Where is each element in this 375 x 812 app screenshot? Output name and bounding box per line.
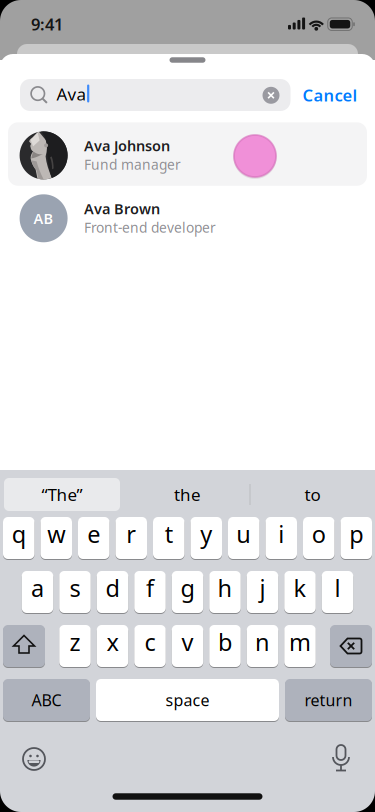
staticText: Ava Johnson [84, 136, 170, 155]
button[interactable]: h [209, 570, 241, 613]
button[interactable]: AB [8, 186, 367, 250]
staticText: x [106, 626, 118, 658]
staticText: 9:41 [31, 13, 63, 35]
staticText: o [312, 518, 326, 550]
staticText: j [259, 572, 265, 604]
button[interactable]: z [59, 624, 91, 667]
button[interactable]: p [340, 516, 372, 559]
staticText: f [146, 572, 154, 604]
staticText: c [144, 626, 155, 658]
staticText: to [304, 483, 320, 506]
staticText: return [304, 689, 352, 711]
staticText: g [180, 572, 194, 604]
staticText: Cancel [302, 84, 357, 106]
staticText: space [165, 689, 209, 711]
staticText: Fund manager [84, 155, 181, 174]
button[interactable]: k [284, 570, 316, 613]
staticText: “The” [41, 483, 82, 506]
staticText: q [12, 518, 26, 550]
button[interactable] [23, 748, 45, 770]
button[interactable]: r [115, 516, 147, 559]
button[interactable]: x [97, 624, 128, 667]
button[interactable]: w [40, 516, 72, 559]
staticText: r [126, 518, 136, 550]
button[interactable]: s [59, 570, 91, 613]
button[interactable]: b [209, 624, 241, 667]
button[interactable]: e [78, 516, 109, 559]
button[interactable] [3, 624, 45, 667]
button[interactable]: Ava Johnson [8, 122, 367, 186]
button[interactable]: space [96, 678, 279, 721]
staticText: a [31, 572, 44, 604]
button[interactable]: “The” [4, 478, 120, 511]
staticText: u [236, 518, 251, 550]
staticText: AB [34, 208, 54, 228]
button[interactable] [330, 624, 372, 667]
staticText: m [289, 626, 311, 658]
button[interactable]: c [134, 624, 166, 667]
button[interactable]: u [228, 516, 259, 559]
staticText: t [165, 518, 173, 550]
button[interactable]: Cancel [295, 79, 365, 111]
staticText: p [349, 518, 363, 550]
button[interactable]: to [257, 478, 367, 511]
button[interactable]: i [265, 516, 297, 559]
button[interactable]: q [3, 516, 34, 559]
button[interactable]: g [172, 570, 203, 613]
staticText: d [105, 572, 119, 604]
button[interactable]: n [247, 624, 278, 667]
button[interactable]: the [132, 478, 242, 511]
button[interactable]: t [153, 516, 184, 559]
button[interactable]: v [172, 624, 203, 667]
staticText: Front-end developer [84, 218, 216, 237]
button[interactable]: return [285, 678, 372, 721]
staticText: n [255, 626, 270, 658]
staticText: e [87, 518, 100, 550]
staticText: z [69, 626, 80, 658]
button[interactable] [329, 745, 353, 773]
button[interactable]: m [284, 624, 316, 667]
staticText: i [278, 518, 284, 550]
staticText: the [174, 483, 201, 506]
button[interactable]: y [190, 516, 222, 559]
button[interactable]: ABC [3, 678, 90, 721]
button[interactable]: a [22, 570, 53, 613]
staticText: y [200, 518, 212, 550]
button[interactable]: f [134, 570, 166, 613]
staticText: w [47, 518, 65, 550]
button[interactable]: o [303, 516, 334, 559]
staticText: ABC [31, 689, 61, 711]
button[interactable] [262, 87, 279, 104]
staticText: b [218, 626, 232, 658]
button[interactable]: l [322, 570, 353, 613]
staticText: Ava Brown [84, 199, 160, 218]
staticText: k [293, 572, 306, 604]
staticText: l [334, 572, 340, 604]
staticText: h [217, 572, 232, 604]
staticText: s [69, 572, 80, 604]
staticText: Ava [56, 82, 86, 106]
button[interactable]: j [247, 570, 278, 613]
button[interactable]: d [97, 570, 128, 613]
staticText: v [181, 626, 193, 658]
